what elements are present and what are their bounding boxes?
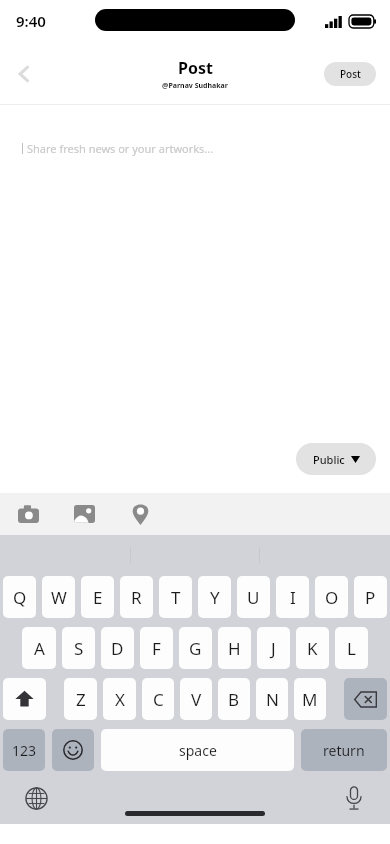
button[interactable]: G xyxy=(179,627,212,669)
staticText: O xyxy=(325,586,339,609)
button[interactable]: V xyxy=(180,678,212,720)
staticText: B xyxy=(228,688,240,711)
button[interactable]: Photos xyxy=(56,493,112,535)
button[interactable]: 123 xyxy=(3,729,45,771)
staticText: H xyxy=(228,637,241,660)
staticText: L xyxy=(347,637,356,660)
staticText: N xyxy=(266,688,279,711)
staticText: 9:40 xyxy=(16,11,46,31)
staticText: space xyxy=(179,741,217,760)
button[interactable]: Location xyxy=(112,493,168,535)
staticText: K xyxy=(307,637,318,660)
button[interactable]: F xyxy=(140,627,173,669)
staticText: G xyxy=(189,637,202,660)
button[interactable]: S xyxy=(62,627,95,669)
button[interactable]: return xyxy=(301,729,387,771)
button[interactable]: H xyxy=(218,627,251,669)
staticText: M xyxy=(302,688,318,711)
staticText: E xyxy=(93,586,103,609)
button[interactable]: B xyxy=(218,678,250,720)
staticText: Z xyxy=(76,688,86,711)
button[interactable]: P xyxy=(354,576,387,618)
button[interactable]: X xyxy=(103,678,136,720)
staticText: D xyxy=(111,637,124,660)
staticText: A xyxy=(34,637,45,660)
button[interactable]: L xyxy=(335,627,368,669)
staticText: S xyxy=(74,637,84,660)
button[interactable]: Back xyxy=(0,50,48,98)
button[interactable]: J xyxy=(257,627,290,669)
button[interactable]: M xyxy=(294,678,326,720)
button[interactable]: W xyxy=(42,576,75,618)
staticText: Post xyxy=(340,67,361,81)
button[interactable]: N xyxy=(256,678,288,720)
button[interactable]: Camera xyxy=(0,493,56,535)
staticText: @Parnav Sudhakar xyxy=(162,81,228,91)
button[interactable]: Y xyxy=(198,576,231,618)
staticText: return xyxy=(323,741,365,760)
staticText: Public xyxy=(313,452,345,467)
button[interactable]: U xyxy=(237,576,270,618)
staticText: Post xyxy=(178,57,213,79)
staticText: F xyxy=(152,637,161,660)
staticText: W xyxy=(51,586,67,609)
button[interactable]: Shift xyxy=(3,678,46,720)
button[interactable]: Z xyxy=(64,678,97,720)
button[interactable]: R xyxy=(120,576,153,618)
staticText: U xyxy=(247,586,260,609)
staticText: R xyxy=(131,586,142,609)
button[interactable]: Q xyxy=(3,576,36,618)
button[interactable]: Public xyxy=(296,443,376,475)
button[interactable]: K xyxy=(296,627,329,669)
button[interactable]: Dictation xyxy=(340,784,368,812)
button[interactable]: I xyxy=(276,576,309,618)
button[interactable]: E xyxy=(81,576,114,618)
staticText: J xyxy=(271,637,276,660)
staticText: I xyxy=(290,586,296,609)
staticText: P xyxy=(365,586,376,609)
staticText: C xyxy=(153,688,164,711)
button[interactable]: space xyxy=(101,729,294,771)
staticText: Q xyxy=(13,586,27,609)
staticText: Y xyxy=(210,586,220,609)
button[interactable]: O xyxy=(315,576,348,618)
staticText: Share fresh news or your artworks... xyxy=(27,141,214,156)
button[interactable]: Change keyboard language xyxy=(22,784,50,812)
staticText: X xyxy=(115,688,125,711)
staticText: T xyxy=(171,586,181,609)
button[interactable]: A xyxy=(22,627,56,669)
button[interactable]: D xyxy=(101,627,134,669)
button[interactable]: C xyxy=(142,678,174,720)
staticText: 123 xyxy=(12,741,37,760)
staticText: V xyxy=(191,688,202,711)
button[interactable]: Delete xyxy=(344,678,387,720)
button[interactable]: T xyxy=(159,576,192,618)
button[interactable]: Post xyxy=(324,62,376,86)
button[interactable]: Emoji xyxy=(52,729,94,771)
